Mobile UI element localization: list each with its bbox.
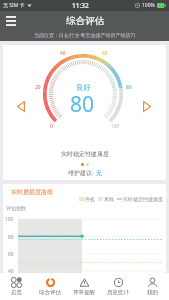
staticText: 良好: [76, 83, 91, 92]
staticText: 60: [102, 50, 108, 57]
staticText: 实时磨损度曲线: [11, 188, 53, 196]
staticText: 100: [111, 123, 120, 130]
staticText: 评估指数: [6, 205, 26, 211]
staticText: 80: [126, 84, 132, 91]
button[interactable]: Previous: [13, 98, 29, 114]
staticText: 0: [50, 123, 53, 130]
staticText: 11:32: [72, 1, 89, 10]
button[interactable]: 我的: [135, 273, 169, 300]
button[interactable]: 总览: [0, 273, 33, 300]
staticText: 100: [5, 216, 14, 223]
staticText: 总览: [11, 289, 22, 296]
staticText: 无: [96, 169, 102, 177]
button[interactable]: 历史统计: [101, 273, 135, 300]
staticText: 80: [70, 90, 95, 119]
staticText: 离线: [104, 196, 114, 202]
staticText: 当前位置：日化行业-粤宝油漆产研所产线切7): [34, 32, 135, 39]
staticText: 综合评估: [66, 15, 104, 27]
staticText: 实时稳定性健康度: [123, 196, 163, 202]
staticText: 80: [8, 234, 14, 241]
staticText: 100%: [142, 2, 155, 9]
staticText: 实时稳定性健康度: [61, 150, 109, 158]
staticText: 40: [8, 268, 14, 273]
staticText: 无 SIM 卡: [3, 2, 25, 9]
staticText: 综合评估: [39, 289, 61, 296]
staticText: 维护建议:: [68, 169, 94, 177]
staticText: 60: [8, 251, 14, 258]
staticText: 20: [35, 84, 41, 91]
staticText: 异常提醒: [73, 289, 95, 296]
button[interactable]: Menu: [2, 12, 19, 29]
staticText: 停机: [85, 196, 95, 202]
staticText: 历史统计: [107, 289, 129, 296]
button[interactable]: 综合评估: [33, 273, 67, 300]
staticText: 40: [60, 50, 66, 57]
button[interactable]: 异常提醒: [67, 273, 101, 300]
button[interactable]: Next: [139, 98, 155, 114]
staticText: 我的: [147, 289, 158, 296]
